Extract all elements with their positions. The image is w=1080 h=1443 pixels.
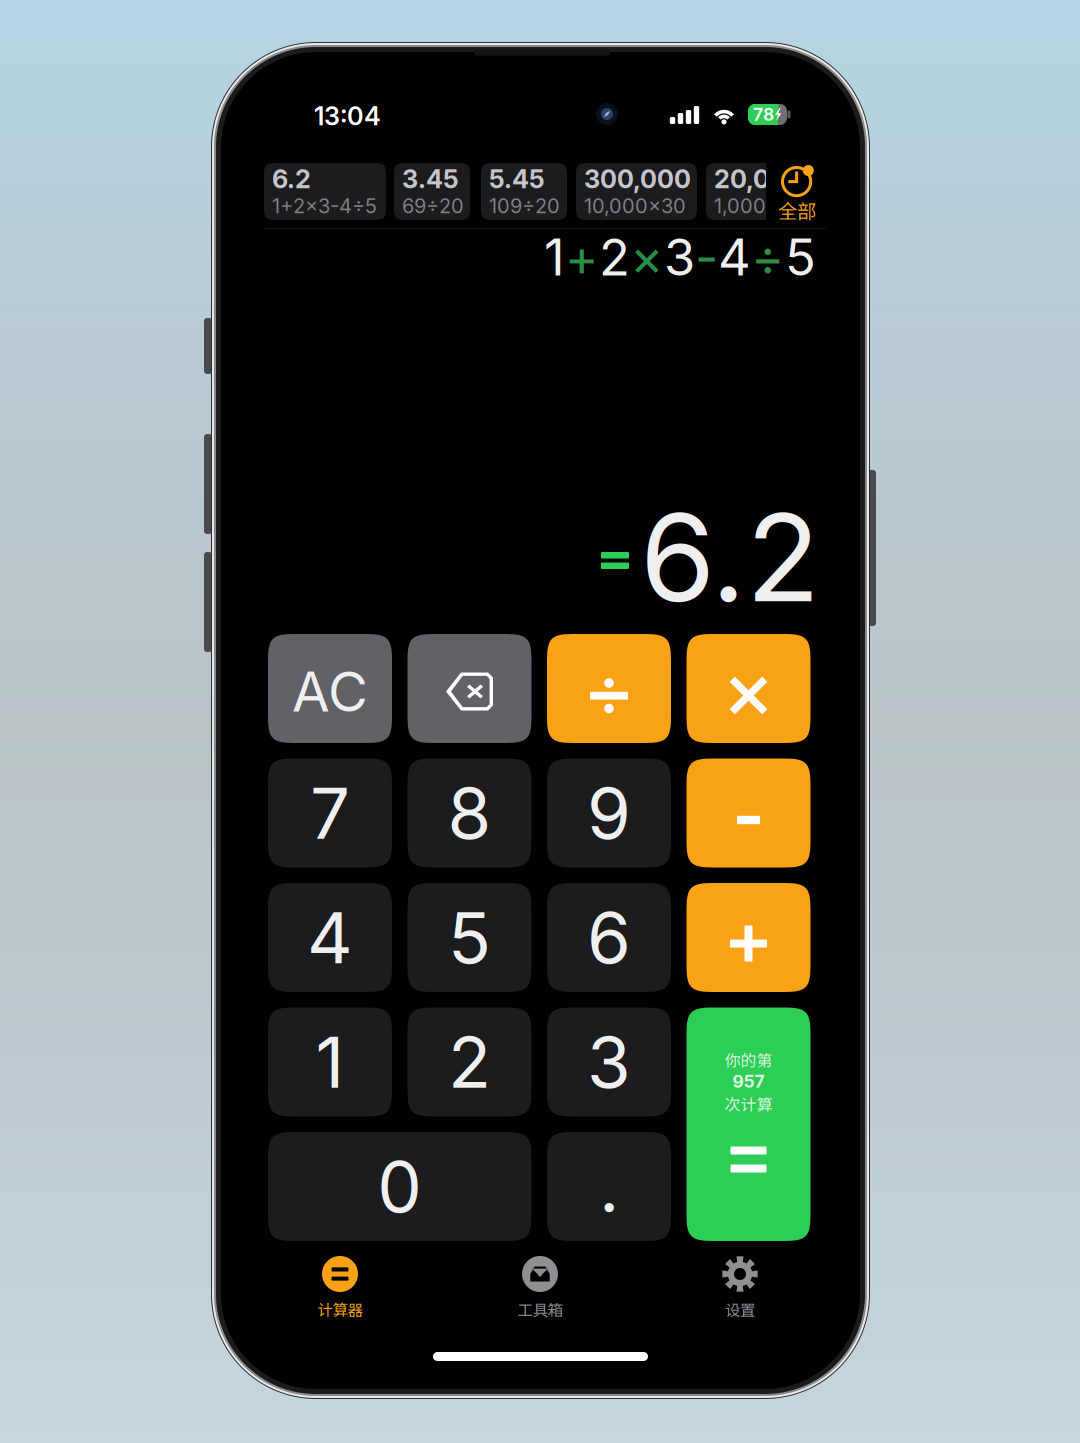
staticText: 109÷20 bbox=[489, 194, 560, 218]
button[interactable]: 全部 bbox=[776, 162, 818, 221]
staticText: 69÷20 bbox=[402, 194, 464, 218]
staticText: 10,000×30 bbox=[584, 194, 686, 218]
staticText: + bbox=[565, 226, 599, 288]
button[interactable]: 8 bbox=[407, 758, 531, 867]
button[interactable]: Multiply bbox=[686, 634, 810, 743]
staticText: 你的第 bbox=[724, 1048, 772, 1071]
button[interactable]: AC bbox=[268, 634, 392, 743]
staticText: 6.2 bbox=[640, 484, 820, 630]
staticText: 5 bbox=[448, 895, 491, 980]
staticText: 0 bbox=[377, 1144, 422, 1229]
staticText: 4 bbox=[307, 895, 353, 980]
button[interactable]: 3 bbox=[547, 1007, 671, 1116]
staticText: 1,000:4 bbox=[714, 194, 785, 218]
button[interactable]: 9 bbox=[547, 758, 671, 867]
staticText: 13:04 bbox=[314, 101, 381, 131]
button[interactable]: 0 bbox=[268, 1132, 531, 1241]
staticText: 4 bbox=[718, 226, 751, 288]
button[interactable]: Plus bbox=[686, 883, 810, 992]
staticText: 3 bbox=[664, 226, 695, 288]
button[interactable]: Equals bbox=[686, 1007, 810, 1241]
button[interactable]: 4 bbox=[268, 883, 392, 992]
staticText: 全部 bbox=[778, 196, 816, 224]
staticText: 1+2×3-4÷5 bbox=[272, 194, 377, 218]
staticText: 2 bbox=[599, 226, 630, 288]
button[interactable]: 20,000 bbox=[706, 163, 766, 220]
button[interactable]: Delete bbox=[407, 634, 531, 743]
staticText: 8 bbox=[447, 770, 491, 856]
staticText: 78 bbox=[753, 104, 774, 125]
staticText: ÷ bbox=[751, 226, 785, 288]
button[interactable]: 3.45 bbox=[394, 163, 470, 220]
staticText: 计算器 bbox=[317, 1298, 362, 1320]
staticText: 7 bbox=[310, 770, 350, 856]
staticText: 20,000 bbox=[714, 164, 801, 194]
staticText: 9 bbox=[587, 770, 631, 856]
staticText: 6 bbox=[587, 895, 631, 980]
button[interactable]: 设置 bbox=[692, 1256, 788, 1318]
button[interactable]: 计算器 bbox=[292, 1256, 388, 1318]
staticText: 工具箱 bbox=[517, 1298, 562, 1320]
button[interactable]: 5.45 bbox=[481, 163, 567, 220]
staticText: 957 bbox=[732, 1071, 764, 1092]
button[interactable]: 7 bbox=[268, 758, 392, 867]
staticText: × bbox=[630, 226, 664, 288]
staticText: 6.2 bbox=[272, 164, 311, 194]
staticText: AC bbox=[292, 658, 368, 724]
button[interactable]: Minus bbox=[686, 758, 810, 867]
button[interactable]: 6.2 bbox=[264, 163, 386, 220]
staticText: 2 bbox=[448, 1019, 491, 1105]
staticText: 300,000 bbox=[584, 164, 691, 194]
button[interactable]: 2 bbox=[407, 1007, 531, 1116]
staticText: 1 bbox=[544, 226, 565, 288]
staticText: 1 bbox=[315, 1019, 344, 1105]
button[interactable]: 300,000 bbox=[576, 163, 697, 220]
staticText: 3.45 bbox=[402, 164, 459, 194]
button[interactable]: 1 bbox=[268, 1007, 392, 1116]
staticText: 5 bbox=[785, 226, 816, 288]
button[interactable]: 工具箱 bbox=[492, 1256, 588, 1318]
staticText: - bbox=[695, 226, 718, 288]
button[interactable]: 5 bbox=[407, 883, 531, 992]
staticText: 5.45 bbox=[489, 164, 545, 194]
staticText: . bbox=[599, 1144, 619, 1229]
button[interactable]: Divide bbox=[547, 634, 671, 743]
staticText: 设置 bbox=[725, 1298, 755, 1320]
button[interactable]: 6 bbox=[547, 883, 671, 992]
button[interactable]: . bbox=[547, 1132, 671, 1241]
staticText: 3 bbox=[587, 1019, 631, 1105]
staticText: 次计算 bbox=[724, 1092, 772, 1115]
